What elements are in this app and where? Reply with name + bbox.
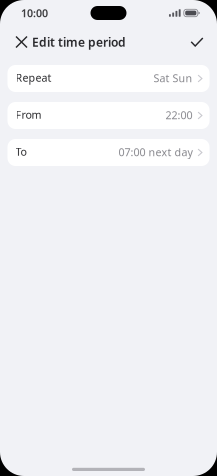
button[interactable]: Repeat (7, 65, 209, 92)
button[interactable]: From (7, 102, 209, 129)
staticText: To (15, 144, 26, 159)
button[interactable]: Close (10, 30, 33, 54)
button[interactable]: To (7, 139, 209, 166)
staticText: Sat Sun (153, 71, 192, 85)
staticText: Edit time period (32, 34, 126, 50)
staticText: 22:00 (165, 108, 192, 122)
staticText: From (15, 107, 41, 122)
staticText: 07:00 next day (118, 145, 192, 159)
staticText: 10:00 (21, 6, 48, 20)
button[interactable]: Done (185, 30, 209, 54)
staticText: Repeat (15, 70, 51, 85)
